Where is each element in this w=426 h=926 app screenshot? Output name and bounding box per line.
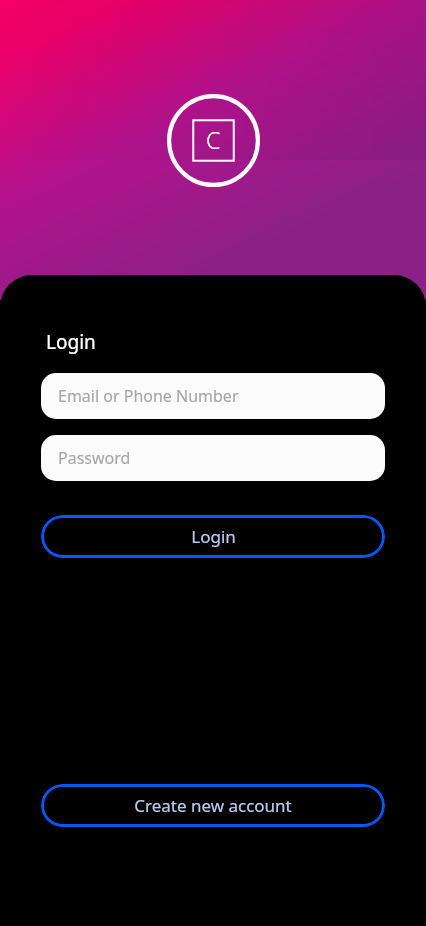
staticText: Create new account [134,794,292,817]
button[interactable]: Login [41,515,385,558]
staticText: Login [46,329,96,355]
staticText: Password [58,447,131,469]
button[interactable]: Create new account [41,784,385,827]
button[interactable]: Email or Phone Number [41,373,385,419]
button[interactable]: Password [41,435,385,481]
staticText: C [206,124,221,155]
staticText: Email or Phone Number [58,385,239,407]
staticText: Login [191,525,236,548]
